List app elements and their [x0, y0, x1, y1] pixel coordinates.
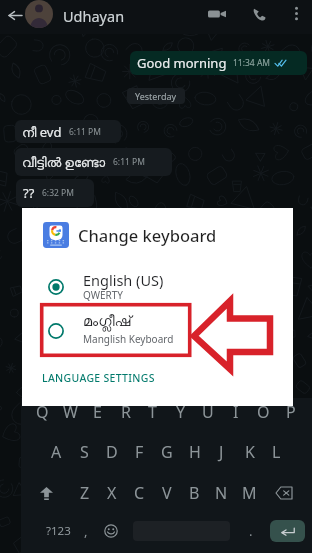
staticText: Yesterday: [135, 90, 177, 102]
staticText: English (US): [83, 270, 164, 290]
staticText: A: [51, 441, 62, 463]
staticText: QWERTY: [83, 288, 124, 302]
button[interactable]: ?123: [40, 518, 76, 544]
staticText: L: [272, 441, 281, 463]
staticText: J: [219, 441, 224, 463]
staticText: നീ evd: [22, 123, 62, 141]
staticText: LANGUAGE SETTINGS: [42, 371, 155, 385]
button[interactable]: K: [236, 438, 263, 466]
staticText: Y: [176, 401, 186, 423]
staticText: 11:34 AM: [233, 57, 271, 69]
staticText: I: [233, 401, 239, 423]
staticText: Change keyboard: [78, 224, 217, 246]
staticText: B: [189, 482, 200, 504]
button[interactable]: U: [194, 398, 221, 426]
button[interactable]: മംഗ്ലീഷ്: [22, 313, 293, 353]
staticText: C: [134, 482, 145, 504]
button[interactable]: വീട്ടിൽ ഉണ്ടോ: [15, 148, 172, 176]
staticText: S: [80, 441, 89, 463]
button[interactable]: English (US): [22, 269, 293, 309]
button[interactable]: Back: [2, 2, 28, 28]
staticText: മംഗ്ലീഷ്: [83, 314, 132, 329]
button[interactable]: W: [57, 398, 84, 426]
button[interactable]: B: [181, 479, 208, 507]
button[interactable]: J: [208, 438, 235, 466]
button[interactable]: S: [71, 438, 98, 466]
staticText: E: [93, 401, 102, 423]
button[interactable]: Q: [29, 398, 56, 426]
staticText: P: [286, 401, 296, 423]
button[interactable]: Emoji: [99, 518, 123, 544]
button[interactable]: Enter: [270, 520, 305, 542]
button[interactable]: നീ evd: [15, 120, 121, 143]
staticText: .: [249, 522, 253, 540]
button[interactable]: H: [181, 438, 208, 466]
button[interactable]: Yesterday: [135, 88, 177, 104]
button[interactable]: R: [112, 398, 139, 426]
staticText: H: [189, 441, 201, 463]
staticText: K: [245, 441, 255, 463]
button[interactable]: Shift: [31, 479, 61, 507]
button[interactable]: Y: [167, 398, 194, 426]
staticText: N: [215, 482, 228, 504]
button[interactable]: M: [236, 479, 263, 507]
button[interactable]: Contact photo: [25, 0, 53, 28]
button[interactable]: N: [208, 479, 235, 507]
staticText: Z: [80, 482, 90, 504]
staticText: ?123: [46, 523, 71, 539]
staticText: Good morning: [137, 54, 227, 72]
button[interactable]: A: [43, 438, 70, 466]
staticText: 6:11 PM: [69, 126, 101, 138]
button[interactable]: .: [241, 518, 261, 544]
button[interactable]: Good morning: [130, 51, 307, 75]
staticText: F: [135, 441, 144, 463]
staticText: ,: [84, 522, 88, 540]
button[interactable]: Backspace: [269, 479, 299, 507]
staticText: R: [121, 401, 131, 423]
button[interactable]: X: [98, 479, 125, 507]
button[interactable]: L: [263, 438, 290, 466]
staticText: Manglish Keyboard: [83, 332, 174, 346]
staticText: Udhayan: [63, 6, 125, 26]
button[interactable]: Voice call: [246, 1, 272, 27]
button[interactable]: LANGUAGE SETTINGS: [42, 371, 155, 385]
button[interactable]: Z: [71, 479, 98, 507]
staticText: U: [202, 401, 214, 423]
button[interactable]: E: [84, 398, 111, 426]
staticText: O: [257, 401, 270, 423]
button[interactable]: V: [153, 479, 180, 507]
staticText: T: [148, 401, 157, 423]
staticText: Q: [36, 401, 49, 423]
button[interactable]: ,: [75, 518, 97, 544]
staticText: X: [107, 482, 117, 504]
staticText: V: [162, 482, 172, 504]
button[interactable]: D: [98, 438, 125, 466]
staticText: 6:11 PM: [113, 156, 145, 168]
button[interactable]: Video call: [204, 1, 230, 27]
staticText: വീട്ടിൽ ഉണ്ടോ: [22, 153, 106, 171]
button[interactable]: G: [153, 438, 180, 466]
staticText: D: [106, 441, 118, 463]
staticText: G: [161, 441, 173, 463]
button[interactable]: T: [139, 398, 166, 426]
button[interactable]: More options: [284, 1, 308, 25]
button[interactable]: O: [250, 398, 277, 426]
staticText: M: [242, 482, 257, 504]
button[interactable]: I: [222, 398, 249, 426]
button[interactable]: Udhayan: [63, 6, 125, 26]
button[interactable]: P: [277, 398, 304, 426]
staticText: 6:32 PM: [42, 187, 74, 199]
button[interactable]: C: [126, 479, 153, 507]
button[interactable]: ??: [16, 179, 94, 207]
staticText: ??: [23, 184, 35, 202]
button[interactable]: F: [126, 438, 153, 466]
staticText: W: [63, 401, 78, 423]
